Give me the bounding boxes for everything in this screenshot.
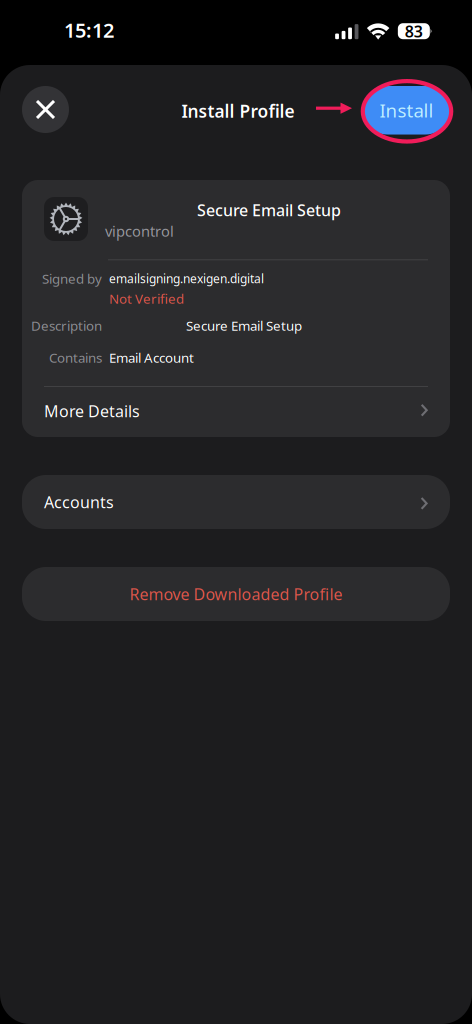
button[interactable]: Remove Downloaded Profile: [22, 567, 450, 621]
staticText: Secure Email Setup: [197, 199, 341, 221]
staticText: Not Verified: [109, 290, 184, 307]
button[interactable]: Accounts: [22, 475, 450, 529]
staticText: Install: [379, 98, 433, 123]
staticText: 83: [405, 21, 423, 42]
button[interactable]: More Details: [22, 387, 450, 437]
staticText: vipcontrol: [105, 221, 174, 241]
button[interactable]: Install: [363, 86, 450, 134]
staticText: Signed by: [42, 270, 102, 287]
staticText: Remove Downloaded Profile: [129, 583, 342, 605]
staticText: Contains: [49, 349, 102, 366]
staticText: Accounts: [44, 491, 114, 513]
staticText: 15:12: [64, 17, 114, 43]
staticText: emailsigning.nexigen.digital: [109, 270, 264, 286]
button[interactable]: Close: [22, 86, 69, 133]
staticText: More Details: [44, 400, 140, 422]
staticText: Email Account: [109, 349, 194, 366]
staticText: Description: [31, 317, 102, 334]
staticText: Install Profile: [181, 99, 294, 122]
staticText: Secure Email Setup: [186, 317, 302, 334]
